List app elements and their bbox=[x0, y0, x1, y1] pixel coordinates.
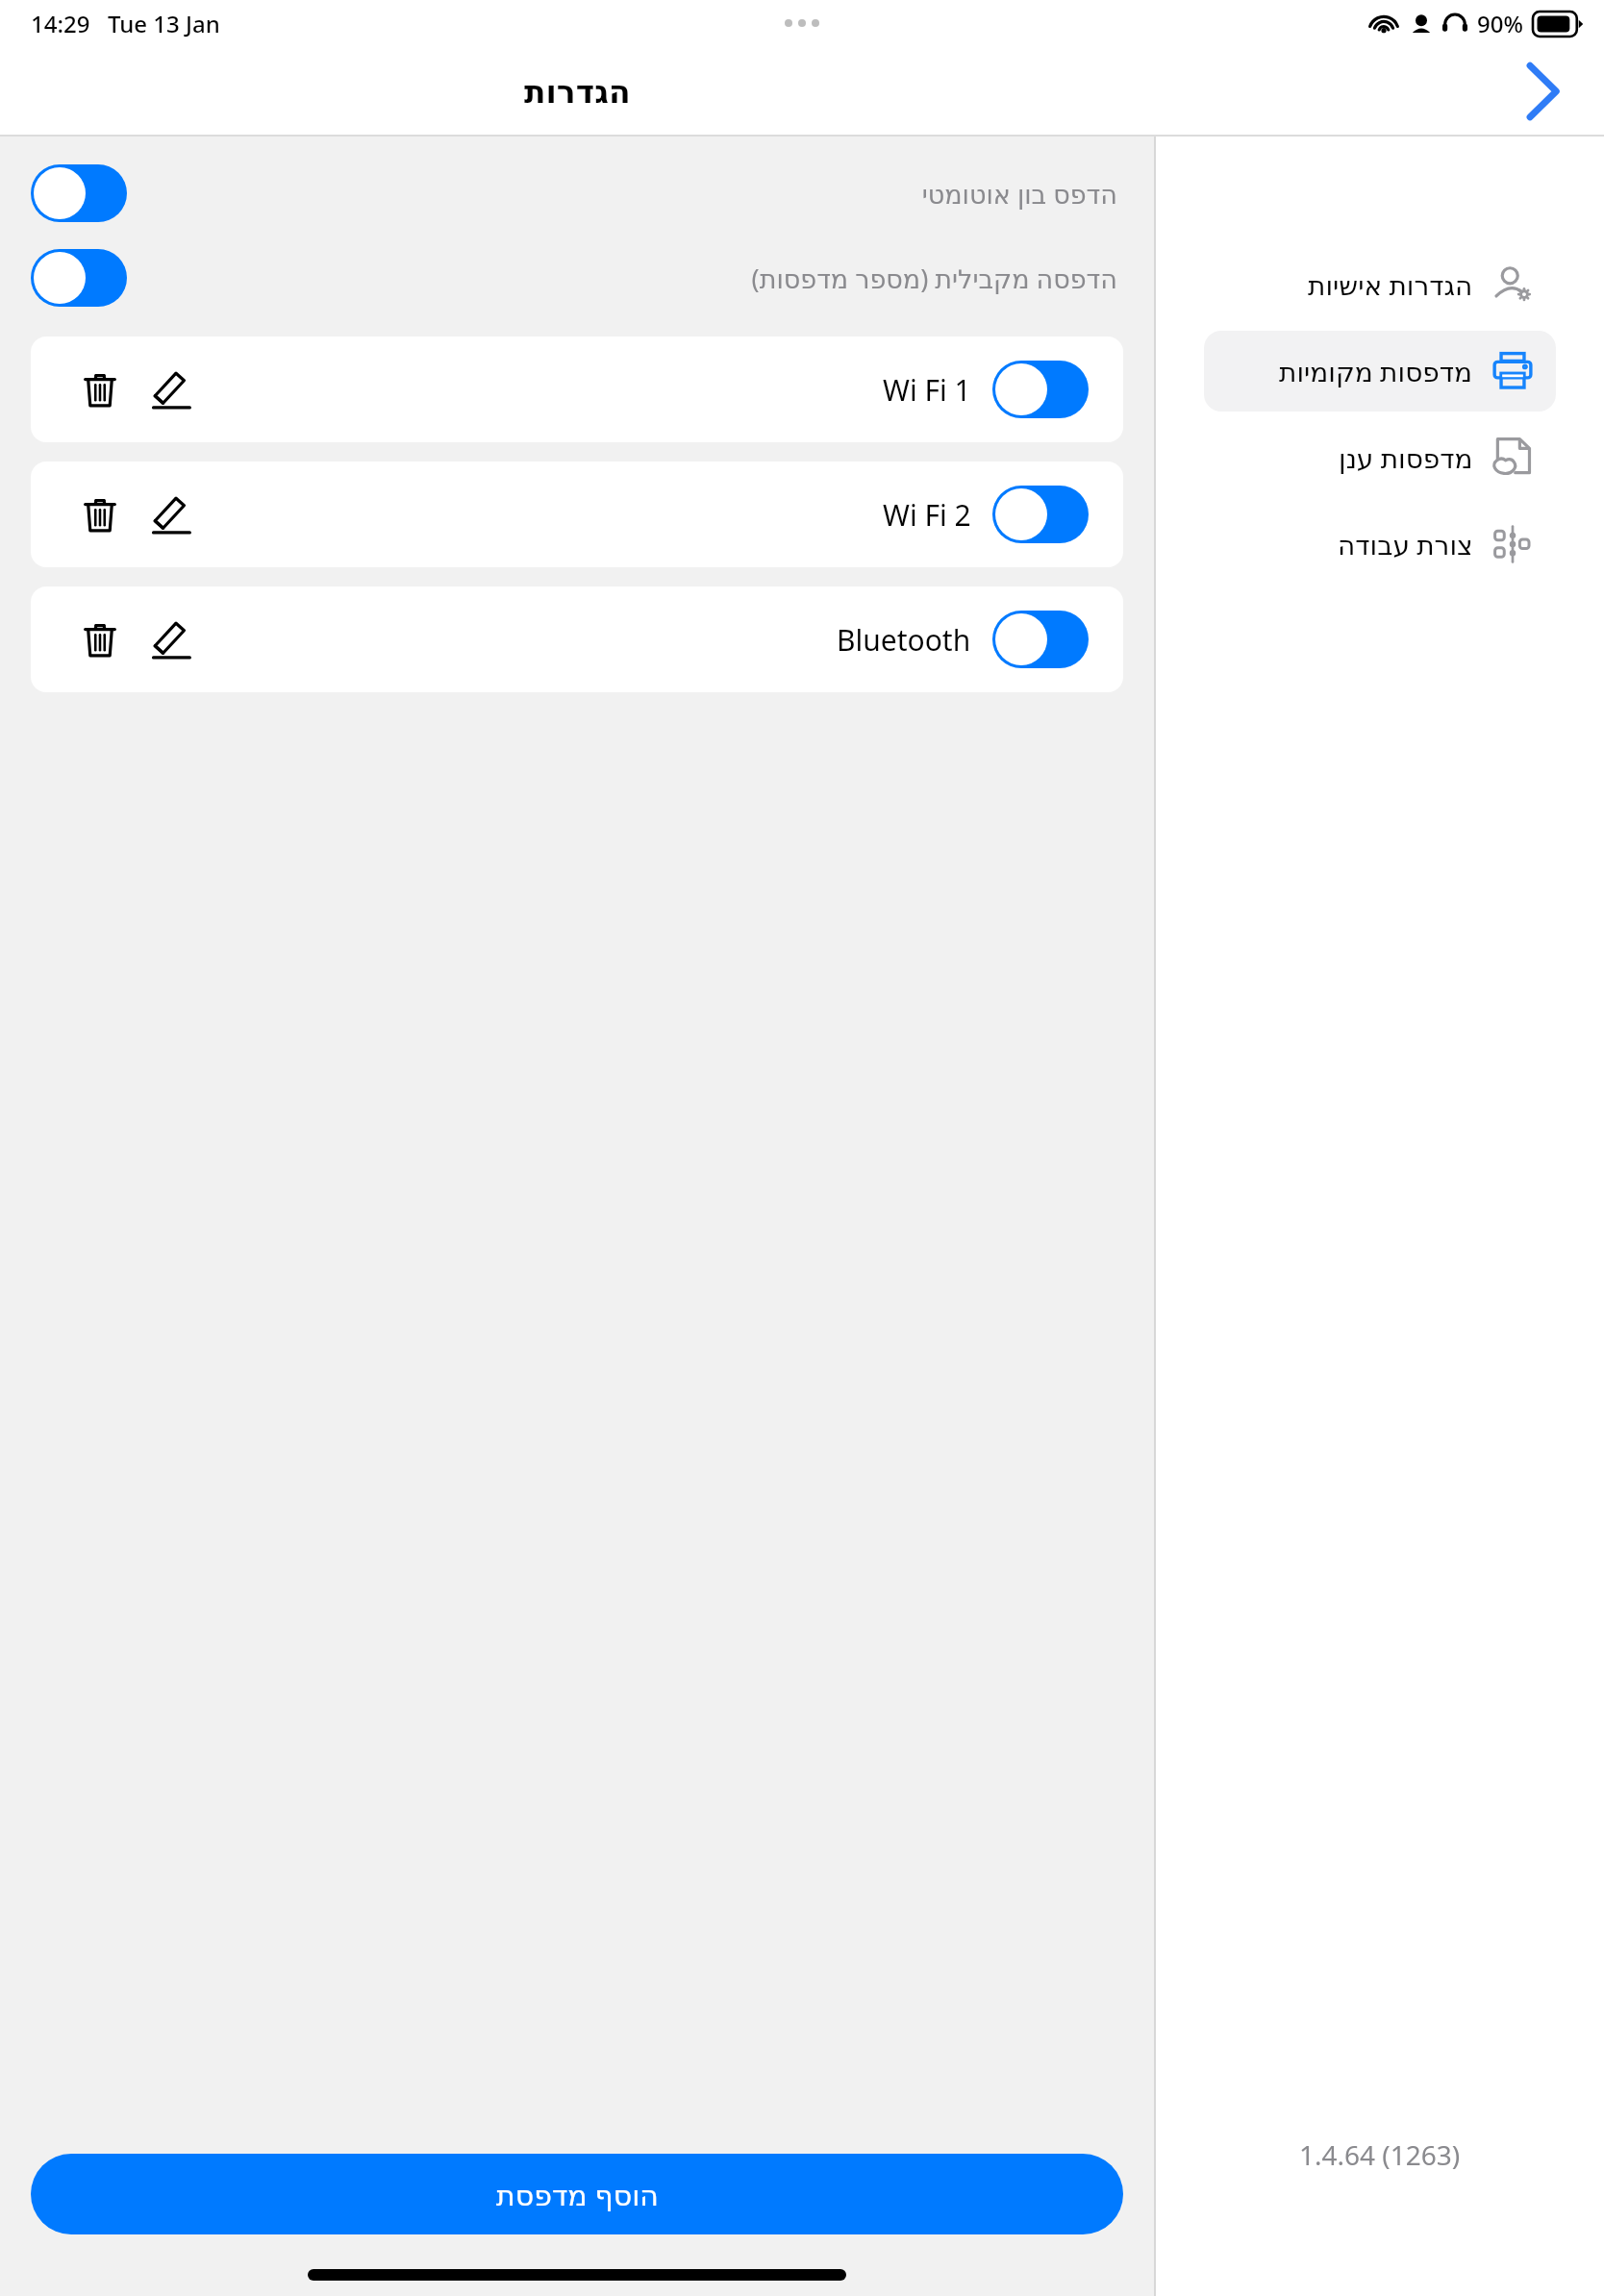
staticText: הגדרות bbox=[524, 73, 631, 110]
staticText: הדפס בון אוטומטי bbox=[921, 176, 1117, 212]
button[interactable]: הגדרות אישיות bbox=[1204, 244, 1556, 325]
button[interactable]: מדפסות ענן bbox=[1204, 417, 1556, 498]
staticText: הוסף מדפסת bbox=[496, 2175, 659, 2214]
button[interactable]: צורת עבודה bbox=[1204, 504, 1556, 585]
button[interactable]: Toggle bbox=[992, 486, 1089, 543]
staticText: צורת עבודה bbox=[1338, 526, 1473, 562]
button[interactable]: מדפסות מקומיות bbox=[1204, 331, 1556, 412]
staticText: 14:29 bbox=[31, 8, 90, 39]
staticText: 90% bbox=[1477, 8, 1523, 39]
staticText: Wi Fi 1 bbox=[883, 370, 971, 410]
button[interactable]: Toggle bbox=[992, 361, 1089, 418]
button[interactable]: Delete bbox=[31, 337, 1123, 442]
button[interactable]: Toggle bbox=[31, 249, 127, 307]
button[interactable]: Edit bbox=[146, 489, 196, 539]
button[interactable]: Toggle bbox=[992, 611, 1089, 668]
staticText: Wi Fi 2 bbox=[883, 495, 971, 535]
button[interactable]: Delete bbox=[31, 462, 1123, 567]
button[interactable]: Toggle bbox=[0, 163, 1154, 223]
button[interactable]: Delete bbox=[75, 489, 125, 539]
button[interactable]: Delete bbox=[31, 586, 1123, 692]
button[interactable]: Toggle bbox=[0, 248, 1154, 308]
button[interactable]: Toggle bbox=[31, 164, 127, 222]
button[interactable]: Delete bbox=[75, 364, 125, 414]
staticText: הדפסה מקבילית (מספר מדפסות) bbox=[751, 261, 1117, 296]
staticText: Bluetooth bbox=[837, 620, 971, 660]
staticText: Tue 13 Jan bbox=[108, 8, 220, 39]
button[interactable]: Close bbox=[1502, 51, 1583, 132]
button[interactable]: הוסף מדפסת bbox=[31, 2154, 1123, 2234]
staticText: מדפסות מקומיות bbox=[1279, 353, 1473, 389]
staticText: 1.4.64 (1263) bbox=[1299, 2136, 1461, 2173]
button[interactable]: Delete bbox=[75, 614, 125, 664]
staticText: מדפסות ענן bbox=[1339, 439, 1473, 476]
button[interactable]: Edit bbox=[146, 364, 196, 414]
button[interactable]: Edit bbox=[146, 614, 196, 664]
staticText: הגדרות אישיות bbox=[1308, 266, 1473, 303]
